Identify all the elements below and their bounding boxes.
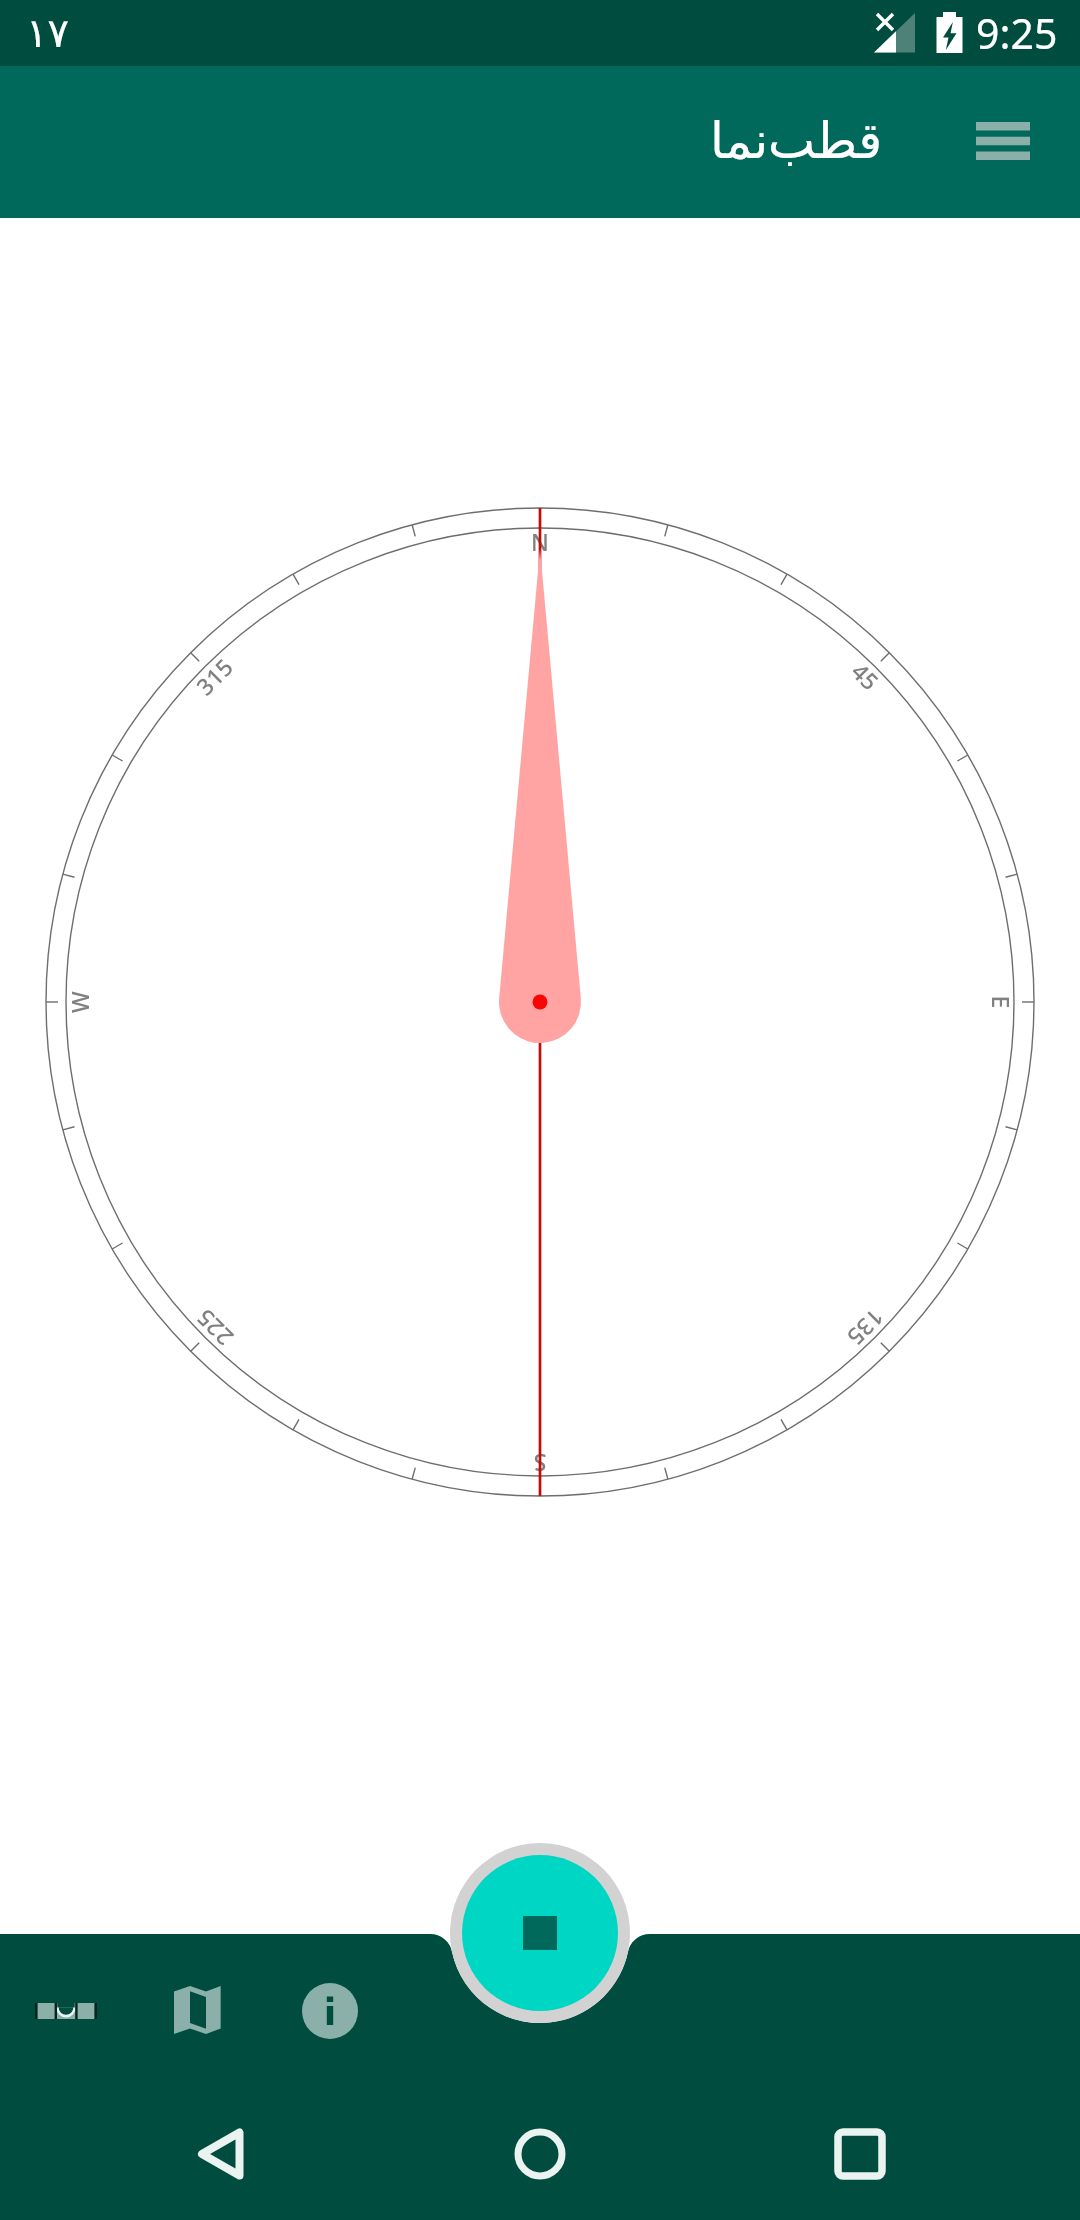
button[interactable]: Recents [820,2114,900,2194]
button[interactable]: Menu [948,96,1052,200]
button[interactable]: Home [500,2114,580,2194]
button[interactable]: Map [146,1958,250,2062]
button[interactable]: Level [14,1959,118,2063]
button[interactable]: Back [181,2114,261,2194]
button[interactable]: Info [278,1958,382,2062]
button[interactable]: Stop [462,1855,618,2011]
